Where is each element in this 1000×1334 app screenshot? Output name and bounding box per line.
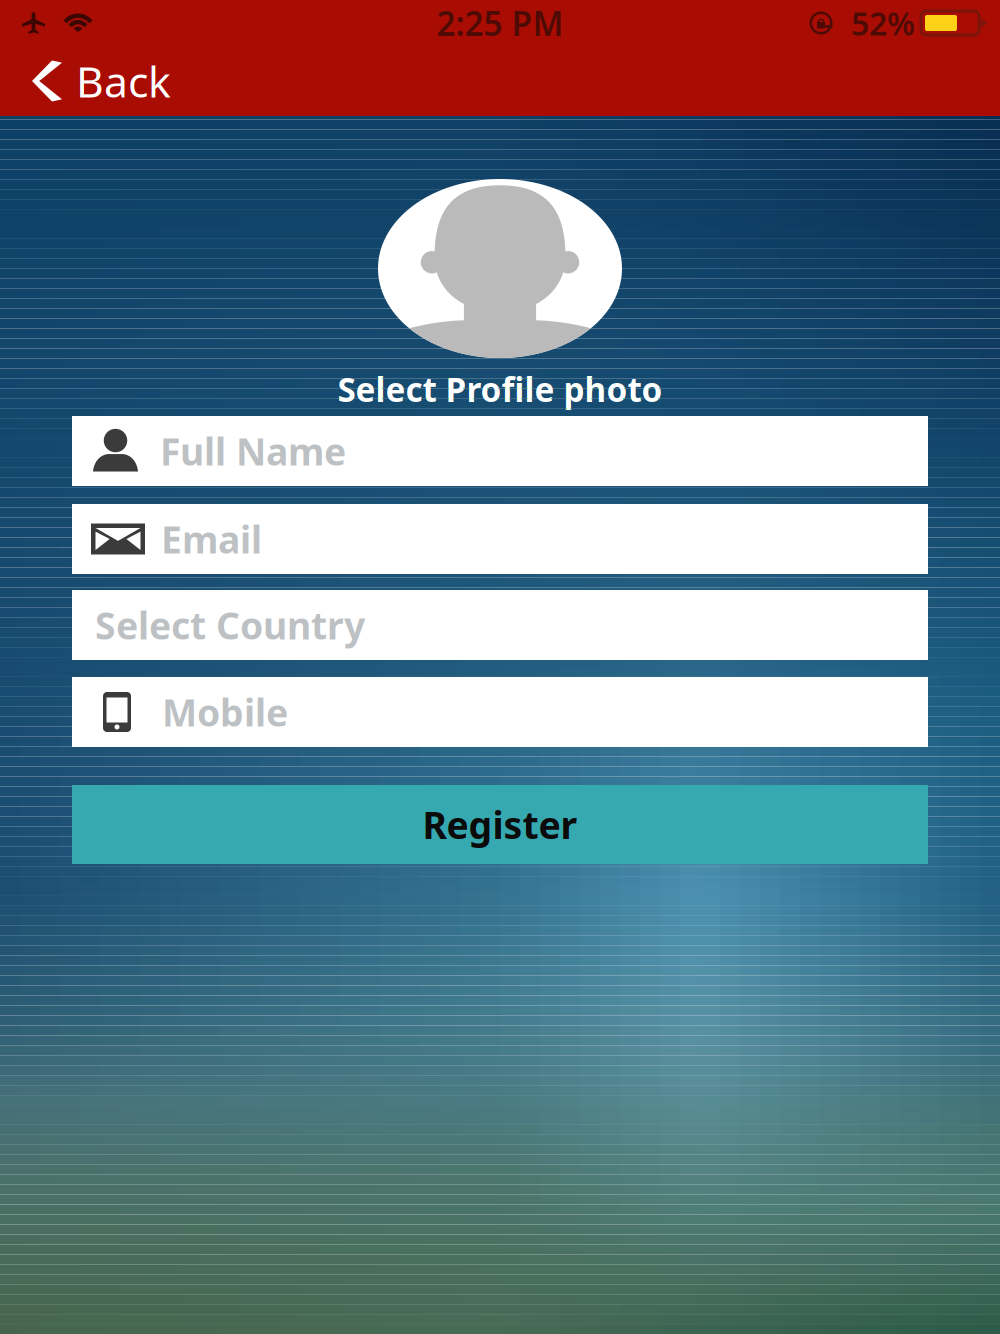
button[interactable]: Back — [0, 46, 191, 116]
staticText: 2:25 PM — [436, 1, 563, 45]
button[interactable]: Select Profile photo — [337, 374, 662, 404]
button[interactable]: Mobile — [72, 677, 928, 747]
button[interactable]: Select profile photo — [378, 179, 622, 358]
staticText: 52% — [851, 2, 915, 44]
staticText: Full Name — [160, 426, 346, 476]
staticText: Select Country — [95, 600, 365, 650]
staticText: Mobile — [162, 687, 288, 737]
button[interactable]: Full Name — [72, 416, 928, 486]
button[interactable]: Register — [72, 785, 928, 864]
staticText: Email — [161, 514, 262, 564]
staticText: Back — [76, 53, 171, 109]
button[interactable]: Email — [72, 504, 928, 574]
button[interactable]: Select Country — [72, 590, 928, 660]
staticText: Register — [422, 800, 577, 849]
staticText: Select Profile photo — [337, 367, 662, 411]
